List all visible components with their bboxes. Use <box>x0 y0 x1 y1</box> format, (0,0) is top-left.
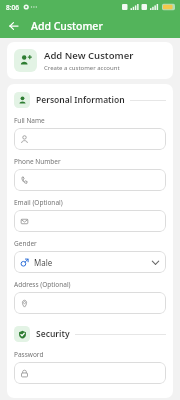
button[interactable] <box>14 362 166 384</box>
staticText: Security <box>36 328 70 340</box>
button[interactable] <box>14 128 166 150</box>
staticText: Full Name <box>14 116 45 125</box>
staticText: Email (Optional) <box>14 198 63 207</box>
staticText: Address (Optional) <box>14 280 71 289</box>
button[interactable]: Back <box>6 18 22 34</box>
button[interactable]: Male <box>14 251 166 273</box>
staticText: Add Customer <box>31 19 103 33</box>
staticText: Phone Number <box>14 157 61 166</box>
button[interactable]: Add New Customer <box>7 42 173 79</box>
staticText: Add New Customer <box>44 49 134 62</box>
button[interactable] <box>14 210 166 232</box>
button[interactable] <box>14 169 166 191</box>
staticText: Password <box>14 350 44 359</box>
staticText: 8:06 <box>6 3 19 12</box>
staticText: Gender <box>14 239 37 248</box>
button[interactable] <box>14 292 166 314</box>
staticText: Personal Information <box>36 94 125 106</box>
staticText: Male <box>34 257 53 268</box>
staticText: Create a customer account <box>44 64 120 72</box>
